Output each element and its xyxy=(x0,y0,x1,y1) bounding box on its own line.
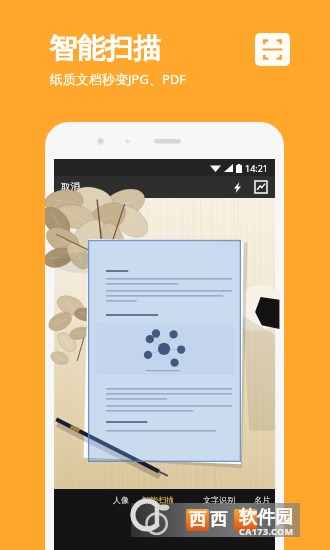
staticText: 智能扫描 xyxy=(142,495,174,505)
button[interactable]: 取消 xyxy=(54,176,110,198)
staticText: 智能扫描 xyxy=(49,31,161,66)
button[interactable]: Flash xyxy=(228,178,246,196)
button[interactable]: 文字识别 xyxy=(199,492,239,508)
staticText: 西西 xyxy=(187,509,229,530)
button[interactable]: 人像 xyxy=(109,492,133,508)
button[interactable]: 名片 xyxy=(250,492,274,508)
staticText: 纸质文档秒变JPG、PDF xyxy=(50,70,186,88)
button[interactable]: Scan xyxy=(255,33,290,66)
staticText: CA173.COM xyxy=(239,525,294,536)
button[interactable]: Gallery xyxy=(252,178,270,196)
staticText: 软件园 xyxy=(239,506,293,529)
staticText: 名片 xyxy=(254,495,270,505)
staticText: 取消 xyxy=(61,181,80,193)
staticText: 文字识别 xyxy=(203,495,235,505)
staticText: 14:21 xyxy=(245,162,269,174)
button[interactable]: 智能扫描 xyxy=(138,492,178,508)
staticText: 人像 xyxy=(113,495,129,505)
